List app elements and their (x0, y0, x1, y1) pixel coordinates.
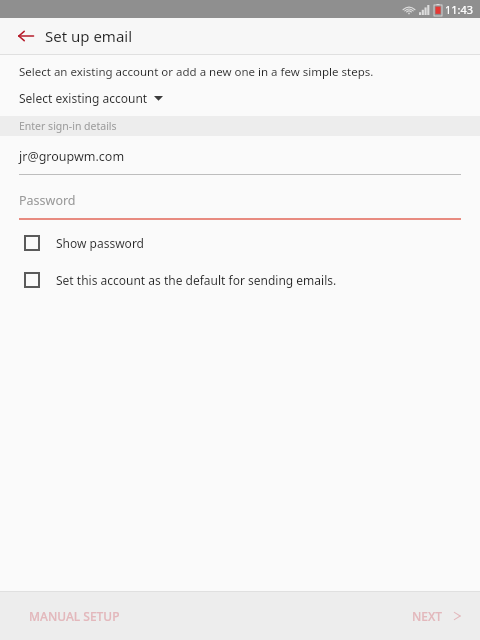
staticText: Set this account as the default for send… (56, 272, 337, 288)
staticText: 11:43 (445, 2, 474, 17)
staticText: Set up email (45, 26, 133, 46)
button[interactable]: jr@groupwm.com (19, 148, 461, 175)
staticText: jr@groupwm.com (19, 148, 125, 165)
staticText: Password (19, 192, 76, 209)
staticText: MANUAL SETUP (29, 608, 120, 624)
button[interactable]: Password (19, 192, 461, 220)
staticText: Select an existing account or add a new … (19, 64, 374, 80)
staticText: Enter sign-in details (19, 119, 117, 133)
staticText: Select existing account (19, 90, 148, 106)
staticText: Show password (56, 235, 144, 251)
button[interactable]: NEXT (412, 592, 480, 640)
button[interactable]: MANUAL SETUP (0, 592, 240, 640)
button[interactable]: Set this account as the default for send… (0, 270, 480, 290)
button[interactable]: Select existing account (19, 90, 163, 106)
button[interactable]: Show password (0, 233, 480, 253)
staticText: NEXT (412, 608, 443, 624)
button[interactable]: Back (10, 20, 42, 52)
